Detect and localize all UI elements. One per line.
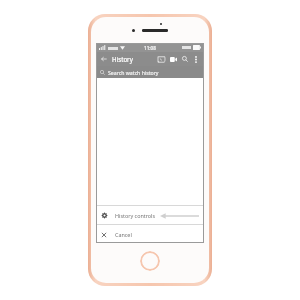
button[interactable]: History controls — [96, 206, 204, 224]
button[interactable]: Cancel — [96, 225, 204, 243]
button[interactable]: Create video — [168, 54, 178, 64]
staticText: History — [112, 55, 133, 63]
button[interactable]: Search — [180, 54, 190, 64]
button[interactable]: Cast — [156, 54, 166, 64]
button[interactable]: Back — [99, 54, 109, 64]
staticText: 11:08 — [144, 45, 156, 51]
button[interactable]: Search watch history — [96, 66, 204, 78]
button[interactable]: More options — [191, 54, 201, 64]
staticText: Search watch history — [108, 69, 159, 76]
staticText: History controls — [115, 212, 156, 219]
staticText: Cancel — [115, 231, 132, 238]
